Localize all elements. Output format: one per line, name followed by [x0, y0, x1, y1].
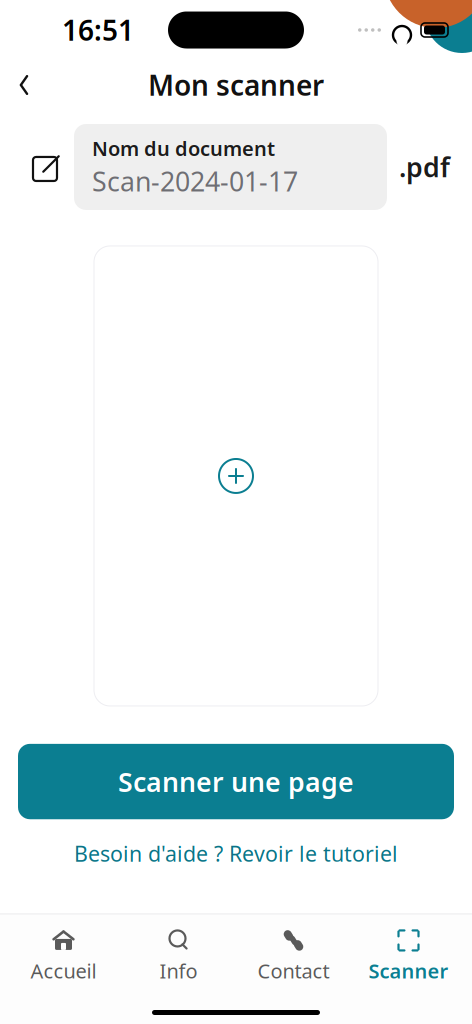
button[interactable]: Accueil: [6, 918, 121, 992]
staticText: Scan-2024-01-17: [92, 164, 298, 199]
staticText: Nom du document: [92, 135, 275, 162]
staticText: .pdf: [399, 149, 450, 185]
staticText: 16:51: [62, 11, 134, 49]
button[interactable]: Besoin d'aide ? Revoir le tutoriel: [64, 831, 408, 875]
staticText: Info: [159, 957, 197, 984]
staticText: Contact: [257, 957, 329, 984]
button[interactable]: Contact: [236, 918, 351, 992]
staticText: Accueil: [30, 957, 96, 984]
button[interactable]: Modifier le nom: [30, 151, 62, 183]
staticText: Besoin d'aide ? Revoir le tutoriel: [74, 839, 398, 867]
staticText: Scanner: [368, 957, 448, 984]
button[interactable]: Info: [121, 918, 236, 992]
button[interactable]: Nom du document: [74, 124, 387, 210]
button[interactable]: Retour: [2, 63, 46, 107]
button[interactable]: Ajouter une page: [94, 246, 378, 706]
staticText: Mon scanner: [148, 66, 324, 104]
button[interactable]: Scanner: [351, 918, 466, 992]
staticText: Scanner une page: [118, 764, 354, 799]
button[interactable]: Scanner une page: [18, 744, 454, 819]
